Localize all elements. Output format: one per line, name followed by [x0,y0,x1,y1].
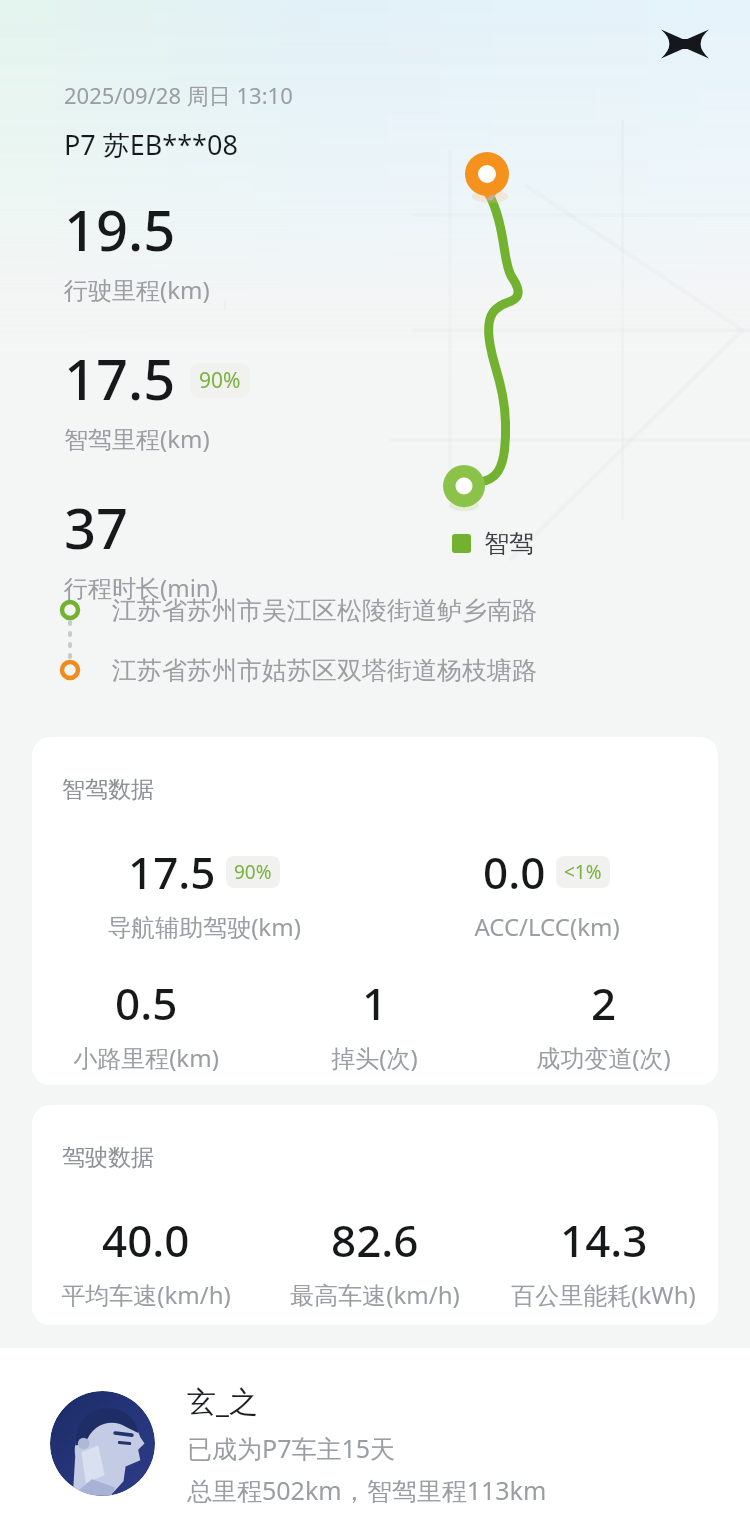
staticText: ACC/LCC(km) [474,910,620,943]
button[interactable]: 驾驶数据 [32,1105,718,1325]
staticText: <1% [564,859,602,885]
staticText: 江苏省苏州市姑苏区双塔街道杨枝塘路 [112,655,537,686]
staticText: 14.3 [560,1210,648,1270]
staticText: 平均车速(km/h) [61,1278,231,1311]
button[interactable]: 玄_之 [0,1348,750,1539]
button[interactable]: 2 [489,973,718,1074]
staticText: 最高车速(km/h) [290,1278,460,1311]
staticText: 90% [234,859,272,885]
staticText: 2025/09/28 周日 13:10 [64,80,293,110]
staticText: 1 [362,973,388,1033]
staticText: P7 苏EB***08 [64,126,238,163]
staticText: 江苏省苏州市吴江区松陵街道鲈乡南路 [112,595,537,626]
staticText: 82.6 [331,1210,419,1270]
staticText: 百公里能耗(kWh) [511,1278,696,1311]
staticText: 掉头(次) [331,1041,418,1074]
button[interactable]: 40.0 [32,1210,260,1311]
staticText: 智驾 [484,528,534,559]
staticText: 40.0 [102,1210,190,1270]
button[interactable]: 14.3 [489,1210,718,1311]
staticText: 90% [199,366,241,395]
button[interactable]: 0.0 [375,842,718,943]
staticText: 2 [591,973,617,1033]
staticText: 37 [64,489,129,565]
staticText: 玄_之 [187,1381,258,1421]
staticText: 总里程502km，智驾里程113km [187,1473,547,1507]
staticText: 智驾里程(km) [64,422,210,455]
button[interactable]: 17.5 [32,842,375,943]
staticText: 智驾数据 [62,775,154,804]
staticText: 17.5 [64,340,176,416]
button[interactable]: 智驾数据 [32,737,718,1085]
staticText: 行驶里程(km) [64,273,210,306]
staticText: 0.0 [483,842,546,902]
staticText: 已成为P7车主15天 [187,1431,396,1465]
staticText: 驾驶数据 [62,1143,154,1172]
staticText: 0.5 [115,973,178,1033]
staticText: 19.5 [64,191,176,267]
staticText: 成功变道(次) [536,1041,671,1074]
button[interactable]: 1 [260,973,489,1074]
staticText: 小路里程(km) [73,1041,219,1074]
button[interactable]: 82.6 [260,1210,489,1311]
button[interactable]: XPeng logo [655,14,715,74]
button[interactable]: 0.5 [32,973,260,1074]
staticText: 导航辅助驾驶(km) [107,910,301,943]
staticText: 17.5 [128,842,216,902]
staticText: 行程时长(min) [64,571,218,604]
